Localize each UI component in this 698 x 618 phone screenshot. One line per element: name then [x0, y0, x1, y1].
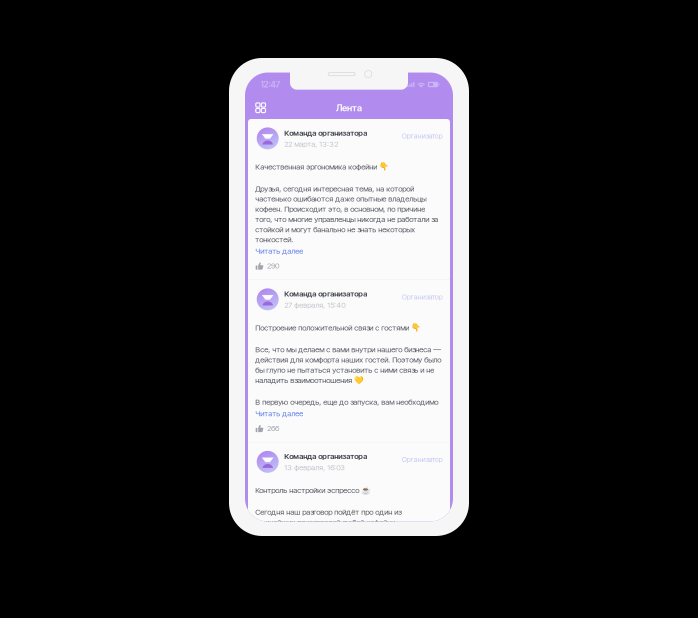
staticText: 22 марта, 13:32 [284, 139, 338, 149]
staticText: Лента [336, 102, 362, 113]
staticText: 27 февраля, 15:40 [284, 300, 345, 310]
button[interactable]: Меню [251, 98, 270, 117]
staticText: 290 [267, 261, 280, 270]
staticText: Контроль настройки эспрессо ☕ [255, 485, 371, 495]
staticText: Организатор [402, 455, 443, 464]
staticText: Читать далее [255, 246, 303, 256]
staticText: Команда организатора [284, 128, 367, 137]
staticText: Команда организатора [284, 289, 367, 298]
staticText: Команда организатора [284, 452, 367, 461]
button[interactable]: 266 [255, 423, 443, 433]
staticText: Читать далее [255, 409, 303, 418]
button[interactable]: 290 [255, 261, 443, 271]
staticText: Сегодня наш разговор пойдёт про один из … [255, 507, 401, 527]
staticText: Построение положительной связи с гостями… [255, 323, 421, 332]
staticText: 266 [267, 423, 279, 433]
button[interactable]: Читать далее [255, 244, 303, 254]
staticText: 13 февраля, 16:03 [284, 463, 345, 472]
staticText: Организатор [402, 293, 443, 301]
staticText: 12:47 [260, 79, 280, 90]
staticText: Организатор [402, 132, 443, 140]
staticText: Друзья, сегодня интересная тема, на кото… [255, 184, 438, 244]
staticText: Все, что мы делаем с вами внутри нашего … [255, 345, 441, 385]
staticText: Качественная эргономика кофейни 👇 [255, 162, 389, 171]
staticText: В первую очередь, еще до запуска, вам не… [255, 397, 438, 407]
button[interactable]: Читать далее [255, 407, 303, 417]
